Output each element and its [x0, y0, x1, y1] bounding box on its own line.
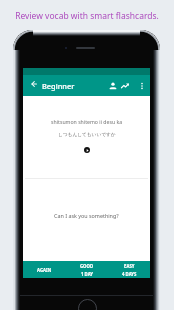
button[interactable]: Account [105, 75, 120, 96]
staticText: shitsumon shitemo ii desu ka [51, 118, 123, 125]
button[interactable]: More options [134, 75, 149, 96]
button[interactable]: Play audio [84, 147, 90, 153]
button[interactable]: GOOD [66, 261, 108, 278]
button[interactable]: AGAIN [23, 261, 66, 278]
button[interactable]: Statistics [116, 75, 133, 96]
staticText: Beginner [42, 81, 75, 91]
staticText: 4 DAYS [122, 271, 137, 277]
staticText: Review vocab with smart flashcards. [0, 10, 174, 22]
button[interactable]: EASY [108, 261, 150, 278]
staticText: AGAIN [37, 267, 52, 273]
staticText: GOOD [80, 263, 94, 269]
staticText: Can I ask you something? [54, 212, 119, 219]
staticText: しつもんしてもいいですか [58, 131, 116, 137]
staticText: 1 DAY [81, 271, 94, 277]
staticText: EASY [124, 263, 135, 269]
button[interactable]: Back [25, 75, 43, 93]
